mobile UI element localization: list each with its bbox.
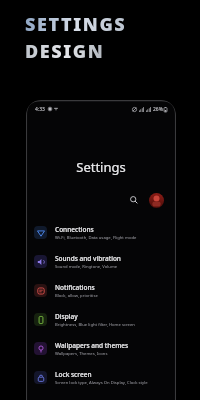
staticText: Wallpapers and themes [55, 341, 129, 350]
button[interactable]: Connections [26, 218, 176, 247]
staticText: Settings [26, 158, 176, 176]
button[interactable]: Wallpapers and themes [26, 334, 176, 363]
staticText: Lock screen [55, 370, 92, 379]
button[interactable]: Search [126, 192, 142, 208]
staticText: Wi-Fi, Bluetooth, Data usage, Flight mod… [55, 235, 137, 241]
staticText: Brightness, Blue light filter, Home scre… [55, 322, 135, 328]
staticText: Wallpapers, Themes, Icons [55, 351, 108, 357]
button[interactable]: Sounds and vibration [26, 247, 176, 276]
staticText: Block, allow, prioritise [55, 293, 98, 299]
staticText: 4:33 [35, 106, 45, 113]
staticText: DESIGN [25, 39, 105, 64]
button[interactable]: Notifications [26, 276, 176, 305]
button[interactable]: Lock screen [26, 363, 176, 392]
staticText: Connections [55, 225, 94, 234]
staticText: Sound mode, Ringtone, Volume [55, 264, 118, 270]
button[interactable]: Account [149, 193, 164, 208]
staticText: 26% [153, 106, 163, 113]
staticText: Sounds and vibration [55, 254, 121, 263]
staticText: SETTINGS [25, 12, 127, 37]
staticText: Notifications [55, 283, 95, 292]
staticText: Screen lock type, Always On Display, Clo… [55, 380, 148, 386]
staticText: Display [55, 312, 78, 321]
button[interactable]: Display [26, 305, 176, 334]
